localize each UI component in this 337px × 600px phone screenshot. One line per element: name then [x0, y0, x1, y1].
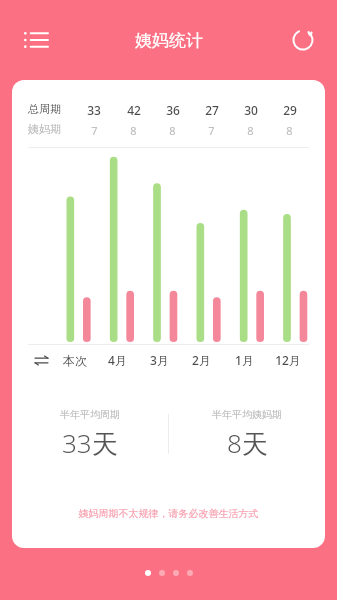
button[interactable]: 1月: [223, 345, 266, 375]
staticText: 姨妈周期不太规律，请务必改善生活方式: [12, 507, 325, 520]
staticText: 8: [286, 123, 293, 138]
button[interactable]: Menu: [14, 18, 58, 62]
staticText: 33: [87, 102, 101, 118]
button[interactable]: 本次: [54, 345, 96, 375]
button[interactable]: Cycle: [283, 20, 323, 60]
button[interactable]: 4月: [96, 345, 138, 375]
button[interactable]: Page 2: [159, 570, 165, 576]
staticText: 总周期: [28, 102, 61, 116]
staticText: 半年平均周期: [60, 408, 120, 421]
staticText: 7: [91, 123, 98, 138]
staticText: 27: [205, 102, 219, 118]
staticText: 3月: [150, 352, 169, 368]
staticText: 7: [208, 123, 215, 138]
button[interactable]: Page 3: [173, 570, 179, 576]
button[interactable]: 2月: [180, 345, 223, 375]
staticText: 29: [283, 102, 297, 118]
staticText: 本次: [63, 353, 87, 368]
staticText: 30: [244, 102, 258, 118]
staticText: 1月: [235, 352, 254, 368]
staticText: 8: [247, 123, 254, 138]
staticText: 半年平均姨妈期: [212, 408, 282, 421]
button[interactable]: Page 4: [187, 570, 193, 576]
staticText: 8天: [227, 425, 268, 461]
staticText: 8: [130, 123, 137, 138]
staticText: 36: [166, 102, 180, 118]
button[interactable]: Swap: [28, 347, 54, 373]
staticText: 姨妈期: [28, 122, 61, 136]
button[interactable]: 12月: [266, 345, 309, 375]
staticText: 42: [127, 102, 141, 118]
staticText: 33天: [62, 425, 118, 461]
staticText: 8: [169, 123, 176, 138]
staticText: 2月: [192, 352, 211, 368]
button[interactable]: 3月: [138, 345, 180, 375]
button[interactable]: Page 1: [145, 570, 151, 576]
staticText: 12月: [275, 352, 301, 368]
staticText: 姨妈统计: [135, 30, 203, 51]
staticText: 4月: [108, 352, 127, 368]
